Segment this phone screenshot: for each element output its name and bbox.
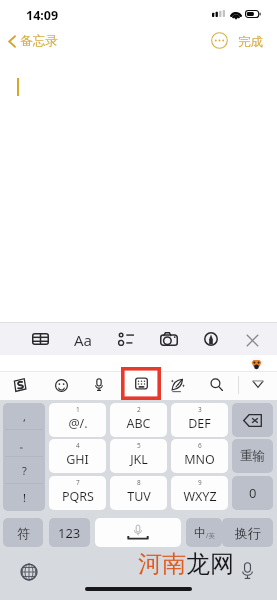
staticText: 备忘录 [20,33,58,49]
staticText: 6 [198,441,202,450]
staticText: 0 [249,484,257,502]
button[interactable]: 。 [3,430,45,457]
button[interactable]: Delete [232,403,273,437]
staticText: @/. [68,415,88,432]
staticText: DEF [188,415,211,432]
button[interactable]: GHI [49,439,106,473]
button[interactable]: ABC [110,403,167,437]
button[interactable]: @/. [49,403,106,437]
button[interactable]: 完成 [238,34,263,50]
staticText: 3 [198,405,202,414]
button[interactable]: Close [245,333,259,347]
staticText: 符 [17,525,30,541]
staticText: ABC [126,415,151,432]
button[interactable]: Voice input [94,377,104,391]
staticText: 龙网 [186,549,234,579]
button[interactable]: 换行 [222,518,273,547]
button[interactable]: WXYZ [171,476,228,510]
staticText: MNO [184,451,215,468]
button[interactable]: MNO [171,439,228,473]
staticText: 河南 [138,549,186,579]
button[interactable]: Checklist [117,331,134,346]
staticText: , [23,409,26,424]
button[interactable]: Sogou input [12,377,28,393]
button[interactable]: PQRS [49,476,106,510]
staticText: Aa [74,330,93,346]
button[interactable]: 中/英 [186,518,222,547]
button[interactable]: , [3,403,45,430]
staticText: 换行 [235,525,261,541]
button[interactable]: Markup [204,332,218,346]
button[interactable]: Emoji [54,378,68,392]
staticText: 14:09 [26,7,59,24]
button[interactable]: 备忘录 [8,33,58,49]
button[interactable]: Table [32,331,49,346]
staticText: PQRS [62,488,94,505]
staticText: 9 [198,478,202,487]
staticText: 7 [76,478,80,487]
button[interactable]: More options [211,32,228,49]
staticText: ! [23,490,26,505]
staticText: JKL [130,451,148,468]
staticText: 。 [19,437,30,451]
button[interactable]: DEF [171,403,228,437]
button[interactable]: Camera [160,331,178,346]
button[interactable]: 123 [49,518,90,547]
button[interactable]: Collapse keyboard [250,378,265,390]
staticText: 中 [194,525,206,540]
staticText: WXYZ [183,488,217,505]
button[interactable]: Space [95,518,181,547]
button[interactable]: Voice [242,562,253,579]
staticText: 2 [137,405,141,414]
button[interactable]: ! [3,484,45,511]
button[interactable]: 符 [3,518,43,547]
staticText: 4 [76,441,80,450]
button[interactable]: ? [3,457,45,484]
staticText: /英 [206,531,215,540]
staticText: ? [22,463,27,478]
button[interactable]: Search [209,377,223,391]
staticText: TUV [127,488,151,505]
button[interactable]: Text format [72,330,94,346]
button[interactable]: Keyboard layout [121,367,161,400]
staticText: 123 [58,524,81,542]
button[interactable]: JKL [110,439,167,473]
button[interactable]: 重输 [232,439,273,473]
staticText: 1 [76,405,80,414]
staticText: GHI [66,451,89,468]
staticText: 5 [137,441,141,450]
staticText: 8 [137,478,141,487]
button[interactable]: TUV [110,476,167,510]
button[interactable]: 0 [232,476,273,510]
button[interactable]: Switch language [20,563,38,581]
button[interactable]: Handwriting [170,377,184,392]
staticText: 重输 [240,448,265,464]
